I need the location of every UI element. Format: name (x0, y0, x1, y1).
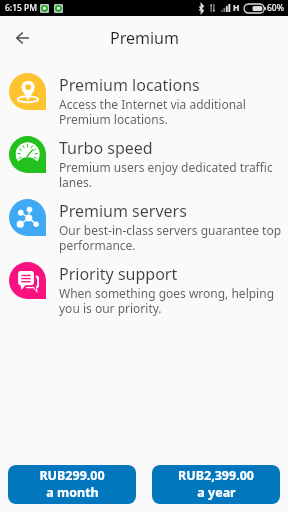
button[interactable]: RUB2,399.00 (152, 465, 280, 504)
button[interactable]: Priority support (0, 262, 288, 316)
staticText: Our best-in-class servers guarantee top … (59, 222, 284, 253)
staticText: H (233, 2, 240, 14)
staticText: Premium locations (59, 74, 200, 96)
staticText: 60% (267, 2, 284, 14)
staticText: a month (46, 484, 99, 501)
button[interactable]: RUB299.00 (8, 465, 136, 504)
button[interactable]: Premium locations (0, 73, 288, 127)
staticText: Access the Internet via additional Premi… (59, 96, 284, 127)
staticText: When something goes wrong, helping you i… (59, 285, 284, 316)
staticText: Turbo speed (59, 137, 153, 159)
staticText: Premium (110, 27, 179, 49)
staticText: Priority support (59, 263, 178, 285)
button[interactable]: Premium servers (0, 199, 288, 253)
staticText: 6:15 PM (5, 2, 38, 14)
button[interactable]: Turbo speed (0, 136, 288, 190)
staticText: RUB299.00 (39, 467, 105, 484)
staticText: RUB2,399.00 (178, 467, 254, 484)
button[interactable]: Back (6, 22, 38, 54)
staticText: a year (197, 484, 236, 501)
staticText: Premium users enjoy dedicated traffic la… (59, 159, 284, 190)
staticText: Premium servers (59, 200, 187, 222)
